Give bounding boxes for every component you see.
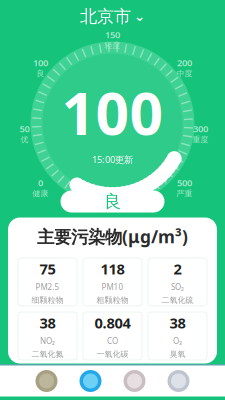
- staticText: 二氧化氮: [31, 349, 63, 359]
- button[interactable]: 北京市: [70, 3, 155, 29]
- staticText: O₃: [173, 335, 182, 346]
- staticText: 重度: [192, 135, 208, 145]
- staticText: 500: [177, 176, 192, 189]
- staticText: 75: [39, 259, 55, 278]
- staticText: 300: [193, 122, 208, 135]
- staticText: 200: [177, 56, 192, 69]
- staticText: 健康: [32, 189, 48, 199]
- staticText: 严重: [176, 189, 192, 199]
- staticText: 臭氧: [169, 349, 185, 359]
- staticText: 轻度: [104, 41, 120, 51]
- staticText: 2: [173, 259, 181, 278]
- staticText: 118: [100, 259, 124, 278]
- staticText: PM2.5: [35, 281, 59, 292]
- staticText: CO: [107, 335, 118, 346]
- staticText: 主要污染物(μg/m³): [37, 225, 188, 248]
- button[interactable]: 良: [60, 190, 164, 212]
- staticText: 38: [39, 313, 55, 332]
- staticText: 粗颗粒物: [96, 295, 128, 305]
- staticText: 0.804: [94, 313, 130, 332]
- button[interactable]: 监测站: [112, 366, 156, 396]
- staticText: PM10: [101, 281, 123, 292]
- staticText: 优: [20, 135, 28, 145]
- staticText: 良: [36, 69, 44, 79]
- staticText: 100: [61, 73, 163, 151]
- staticText: 中度: [176, 69, 192, 79]
- staticText: NO₂: [40, 335, 55, 346]
- staticText: 0: [38, 176, 43, 189]
- staticText: 北京市: [80, 6, 131, 27]
- staticText: ⌄: [134, 9, 145, 24]
- button[interactable]: 天气: [24, 366, 68, 396]
- button[interactable]: 空气质量: [68, 366, 112, 396]
- staticText: 50: [19, 122, 29, 135]
- staticText: 38: [169, 313, 185, 332]
- staticText: 100: [33, 56, 48, 69]
- staticText: 细颗粒物: [31, 295, 63, 305]
- staticText: 15:00更新: [92, 153, 133, 166]
- staticText: 二氧化硫: [161, 295, 193, 305]
- staticText: SO₂: [171, 281, 184, 292]
- staticText: 150: [105, 28, 120, 41]
- button[interactable]: 计算器: [156, 366, 200, 396]
- staticText: 良: [104, 191, 121, 212]
- staticText: 一氧化碳: [96, 349, 128, 359]
